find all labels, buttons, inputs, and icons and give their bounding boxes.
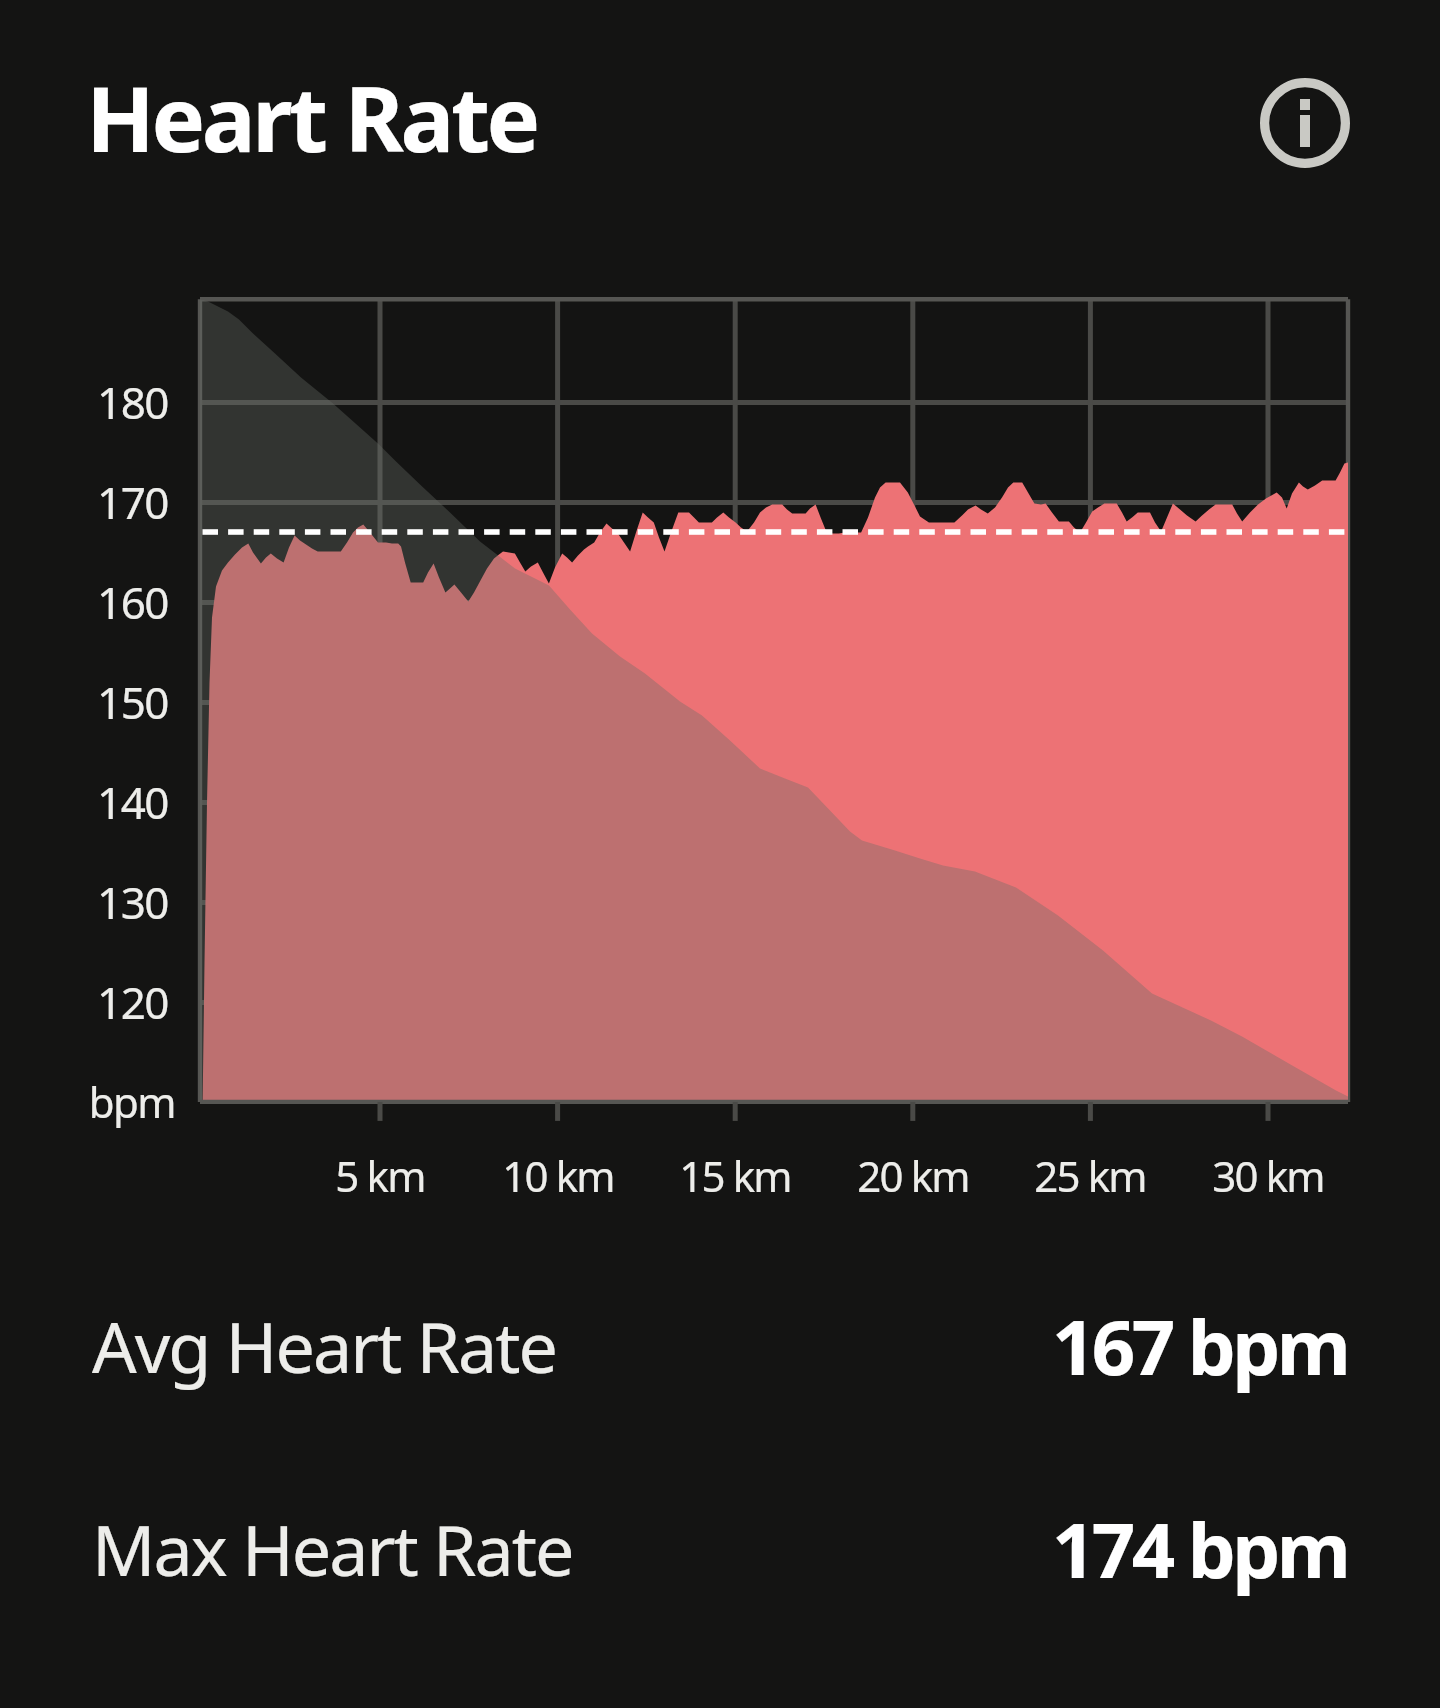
staticText: 5 km [220, 1147, 540, 1204]
staticText: 15 km [575, 1147, 895, 1204]
staticText: 20 km [753, 1147, 1073, 1204]
staticText: 130 [0, 872, 168, 932]
staticText: 120 [0, 972, 168, 1032]
staticText: Avg Heart Rate [92, 1298, 557, 1393]
staticText: 25 km [930, 1147, 1250, 1204]
button[interactable]: Max Heart Rate [0, 1461, 1440, 1636]
button[interactable]: Avg Heart Rate [0, 1258, 1440, 1433]
staticText: 30 km [1108, 1147, 1428, 1204]
button[interactable]: Info [1246, 64, 1364, 182]
staticText: 167 bpm [1052, 1294, 1348, 1398]
staticText: 174 bpm [1052, 1497, 1348, 1601]
staticText: bpm [7, 1073, 175, 1130]
other: Heart rate over distance chart [0, 0, 1440, 1708]
staticText: 180 [0, 372, 168, 432]
staticText: Heart Rate [86, 56, 537, 179]
staticText: 150 [0, 672, 168, 732]
staticText: 140 [0, 772, 168, 832]
staticText: 10 km [398, 1147, 718, 1204]
staticText: 160 [0, 572, 168, 632]
staticText: Max Heart Rate [92, 1501, 573, 1596]
staticText: 170 [0, 472, 168, 532]
